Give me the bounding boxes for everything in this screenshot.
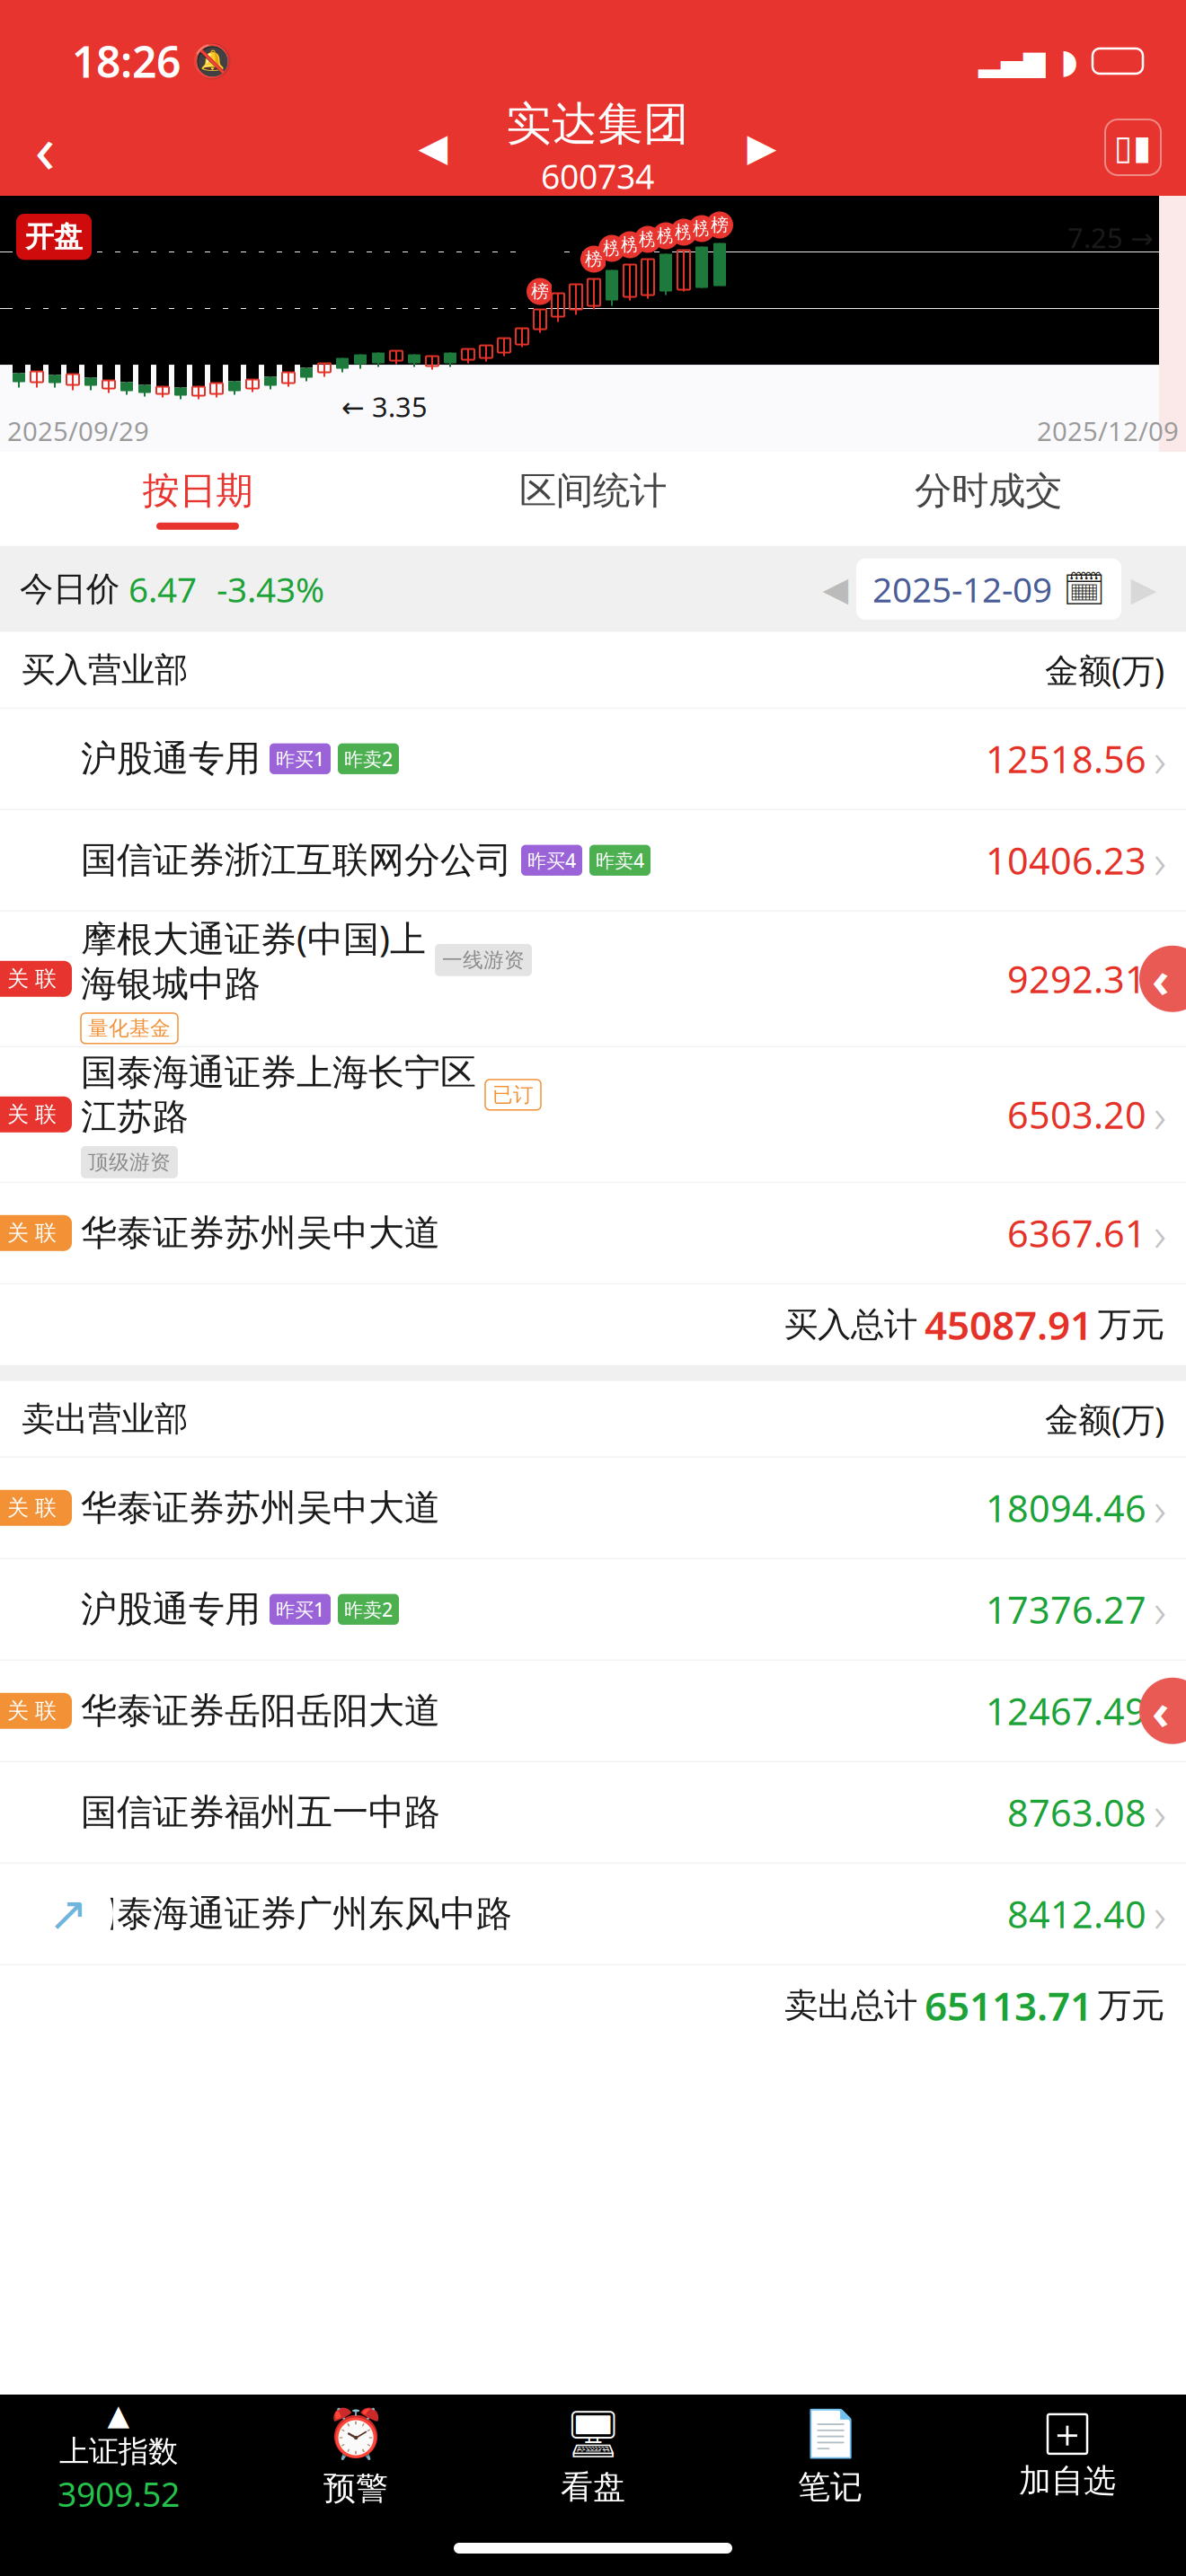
button[interactable]: 区间统计 [395, 452, 791, 546]
staticText: ← 3.35 [341, 388, 428, 425]
staticText: 沪股通专用 [81, 1587, 261, 1631]
staticText: 榜 [603, 237, 621, 259]
staticText: 金额(万) [1045, 1397, 1164, 1441]
staticText: 🔕 [191, 42, 233, 80]
button[interactable]: Open related panel [1139, 1678, 1186, 1744]
staticText: ▂▄▆ [978, 45, 1046, 77]
button[interactable]: 按日期 [0, 452, 395, 546]
staticText: 加自选 [1019, 2461, 1116, 2501]
staticText: 预警 [323, 2469, 388, 2508]
button[interactable]: Previous stock [399, 106, 467, 189]
button[interactable]: 关 联 [0, 911, 1186, 1046]
staticText: ↗ [48, 1887, 89, 1941]
staticText: 12467.49 [986, 1686, 1146, 1735]
staticText: 华泰证券苏州吴中大道 [81, 1486, 440, 1530]
staticText: 华泰证券岳阳岳阳大道 [81, 1689, 440, 1733]
staticText: 金额(万) [1045, 648, 1164, 692]
staticText: ▯▮ [1114, 128, 1152, 166]
button[interactable]: K-line chart [1105, 119, 1161, 175]
button[interactable]: 国泰海通证券广州东风中路 [0, 1864, 1186, 1964]
staticText: 昨买1 [276, 746, 324, 771]
button[interactable]: 分时成交 [791, 452, 1186, 546]
button[interactable]: ＋ [949, 2407, 1186, 2508]
staticText: 摩根大通证券(中国)上海银城中路 [81, 914, 426, 1006]
staticText: 笔记 [798, 2467, 863, 2507]
staticText: ⏰ [326, 2407, 385, 2461]
button[interactable]: Next day [1121, 560, 1166, 618]
staticText: 6.47 [128, 566, 197, 612]
button[interactable]: 关 联 [0, 1661, 1186, 1761]
staticText: › [1154, 727, 1166, 791]
button[interactable]: Share [23, 1869, 113, 1959]
staticText: 8412.40 [1007, 1889, 1146, 1938]
staticText: 榜 [711, 214, 729, 236]
staticText: 昨卖2 [344, 1597, 393, 1622]
staticText: 上证指数 [59, 2433, 178, 2470]
button[interactable]: 国信证券福州五一中路 [0, 1762, 1186, 1863]
staticText: -3.43% [217, 566, 324, 612]
staticText: 顶级游资 [88, 1150, 171, 1175]
staticText: ▶ [747, 126, 777, 169]
staticText: 分时成交 [915, 468, 1062, 514]
staticText: 昨卖4 [596, 848, 644, 873]
staticText: 榜 [639, 228, 657, 250]
staticText: 🗓 [1063, 570, 1105, 608]
staticText: 一线游资 [442, 947, 525, 972]
staticText: 按日期 [142, 468, 253, 514]
button[interactable]: 🖥 [474, 2401, 712, 2514]
staticText: ◀ [418, 126, 448, 169]
staticText: 关 联 [7, 1495, 57, 1521]
staticText: 3909.52 [58, 2472, 180, 2516]
button[interactable]: 沪股通专用 [0, 708, 1186, 809]
staticText: 已订 [492, 1082, 534, 1107]
button[interactable]: Back [0, 106, 90, 189]
button[interactable]: ▲ [0, 2392, 237, 2523]
button[interactable]: 2025-12-09 [856, 558, 1121, 620]
staticText: 国泰海通证券上海长宁区江苏路 [81, 1051, 476, 1139]
staticText: 榜 [657, 225, 675, 247]
staticText: 6503.20 [1007, 1090, 1146, 1139]
button[interactable]: ⏰ [237, 2399, 474, 2515]
staticText: 实达集团 [506, 96, 689, 152]
staticText: 昨卖2 [344, 746, 393, 771]
staticText: 国泰海通证券广州东风中路 [81, 1892, 512, 1936]
button[interactable]: Previous day [815, 560, 856, 618]
staticText: 万元 [1098, 1985, 1164, 2026]
button[interactable]: 关 联 [0, 1183, 1186, 1283]
staticText: 45087.91 [925, 1298, 1093, 1351]
staticText: 65113.71 [925, 1979, 1093, 2032]
staticText: 看盘 [561, 2467, 625, 2507]
staticText: 关 联 [7, 966, 57, 992]
staticText: 国信证券浙江互联网分公司 [81, 838, 512, 882]
button[interactable]: Next stock [728, 106, 796, 189]
button[interactable]: 关 联 [0, 1047, 1186, 1182]
staticText: 6367.61 [1007, 1208, 1146, 1258]
button[interactable]: 国信证券浙江互联网分公司 [0, 810, 1186, 911]
staticText: 2025-12-09 [872, 566, 1052, 612]
staticText: 10406.23 [986, 836, 1146, 885]
button[interactable]: 📄 [712, 2401, 949, 2514]
staticText: 17376.27 [986, 1585, 1146, 1634]
staticText: 榜 [621, 234, 639, 256]
button[interactable]: 沪股通专用 [0, 1559, 1186, 1660]
staticText: › [1154, 828, 1166, 892]
button[interactable]: 关 联 [0, 1458, 1186, 1558]
staticText: › [1154, 1476, 1166, 1540]
staticText: ◀ [823, 570, 849, 608]
staticText: 8763.08 [1007, 1788, 1146, 1837]
staticText: 2025/12/09 [1037, 413, 1179, 448]
staticText: 📄 [802, 2408, 859, 2460]
staticText: › [1154, 1781, 1166, 1844]
staticText: ‹ [1152, 947, 1169, 1011]
staticText: 🖥 [564, 2408, 622, 2460]
staticText: ◗ [1060, 42, 1078, 80]
staticText: 沪股通专用 [81, 737, 261, 781]
staticText: 12518.56 [986, 734, 1146, 783]
staticText: › [1154, 1882, 1166, 1946]
button[interactable]: Open related panel [1139, 946, 1186, 1012]
staticText: 榜 [531, 280, 549, 303]
staticText: 昨买1 [276, 1597, 324, 1622]
